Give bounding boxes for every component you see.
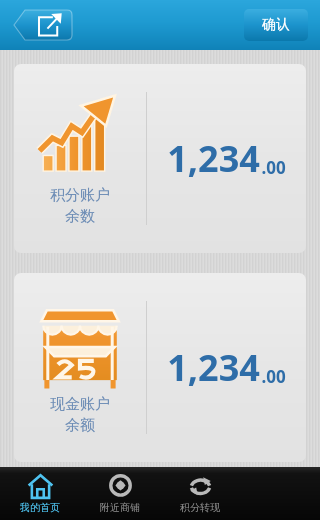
button[interactable]: 积分账户 [14, 64, 306, 253]
staticText: 余额 [65, 416, 95, 435]
staticText: 确认 [262, 16, 290, 34]
staticText: 1,234 [167, 134, 260, 183]
button[interactable]: Share [14, 8, 72, 42]
staticText: .00 [261, 156, 286, 179]
button[interactable]: 附近商铺 [80, 467, 160, 520]
staticText: 余数 [65, 207, 95, 226]
staticText: 现金账户 [50, 395, 110, 414]
button[interactable]: 确认 [244, 9, 308, 41]
staticText: 1,234 [167, 343, 260, 392]
button[interactable]: 积分转现 [160, 467, 240, 520]
staticText: .00 [261, 365, 286, 388]
button[interactable]: Tab [240, 467, 320, 520]
button[interactable]: 我的首页 [0, 467, 80, 520]
staticText: 我的首页 [20, 501, 60, 514]
button[interactable]: 现金账户 [14, 273, 306, 462]
staticText: 积分账户 [50, 186, 110, 205]
staticText: 附近商铺 [100, 501, 140, 514]
staticText: 积分转现 [180, 501, 220, 514]
